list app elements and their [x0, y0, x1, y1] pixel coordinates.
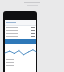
button[interactable]: [5, 61, 36, 64]
button[interactable]: [5, 20, 36, 25]
button[interactable]: [5, 58, 36, 61]
button[interactable]: [5, 26, 36, 29]
button[interactable]: [5, 35, 36, 38]
button[interactable]: [5, 32, 36, 35]
button[interactable]: [5, 29, 36, 32]
button[interactable]: [5, 64, 36, 67]
